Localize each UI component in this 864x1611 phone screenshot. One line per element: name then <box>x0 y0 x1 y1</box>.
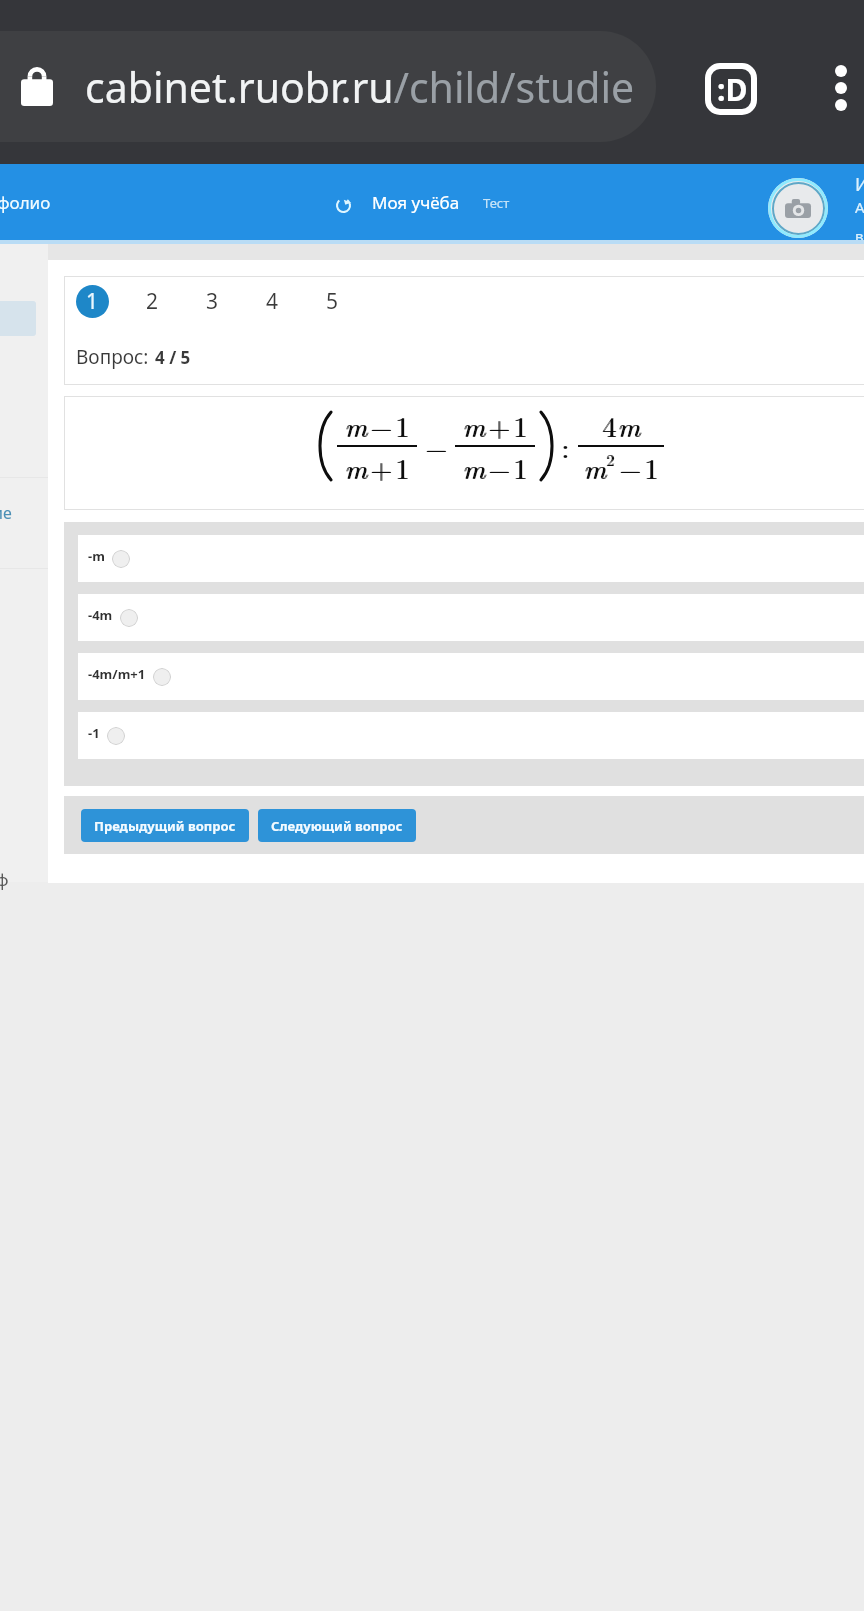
button[interactable]: Тест <box>483 194 510 212</box>
staticText: 2 <box>146 287 159 316</box>
staticText: 4 <box>602 405 617 445</box>
staticText: − <box>489 447 511 487</box>
button[interactable]: 2 <box>136 285 169 318</box>
button[interactable]: Profile photo <box>768 178 828 238</box>
staticText: − <box>370 405 392 445</box>
button[interactable]: 4 <box>256 285 289 318</box>
button[interactable]: Select -4m <box>120 609 138 627</box>
button[interactable]: Моя учёба <box>372 191 460 214</box>
staticText: -4m/m+1 <box>88 665 146 683</box>
staticText: m <box>345 447 368 487</box>
staticText: 4 / 5 <box>155 346 191 369</box>
staticText: -1 <box>88 724 100 742</box>
staticText: − <box>619 447 641 487</box>
staticText: m <box>584 447 607 487</box>
button[interactable]: -m <box>78 535 864 582</box>
staticText: 1 <box>514 405 529 445</box>
staticText: cabinet.ruobr.ru/child/studie <box>85 59 635 115</box>
button[interactable]: 3 <box>196 285 229 318</box>
button[interactable]: Предыдущий вопрос <box>81 809 249 842</box>
staticText: 4 <box>603 405 618 445</box>
staticText: : <box>562 426 570 466</box>
staticText: m <box>618 405 641 445</box>
button[interactable]: Refresh <box>336 198 351 213</box>
staticText: И <box>855 172 864 197</box>
button[interactable]: ие <box>0 502 12 524</box>
staticText: m <box>583 447 606 487</box>
staticText: m <box>462 405 485 445</box>
staticText: m <box>344 447 367 487</box>
staticText: 1 <box>395 405 410 445</box>
staticText: ф <box>0 868 9 891</box>
staticText: − <box>426 426 448 466</box>
staticText: -4m <box>88 606 113 624</box>
button[interactable]: Следующий вопрос <box>258 809 416 842</box>
staticText: 1 <box>513 447 528 487</box>
button[interactable]: More options <box>806 53 864 123</box>
staticText: − <box>488 447 510 487</box>
staticText: 1 <box>514 447 529 487</box>
staticText: 1 <box>395 447 410 487</box>
staticText: − <box>371 405 393 445</box>
staticText: 1 <box>513 405 528 445</box>
staticText: 1 <box>396 405 411 445</box>
staticText: m <box>617 405 640 445</box>
staticText: Следующий вопрос <box>271 817 403 835</box>
button[interactable]: -4m <box>78 594 864 641</box>
staticText: А <box>855 197 864 217</box>
button[interactable]: Select -1 <box>107 727 125 745</box>
staticText: в <box>855 226 864 246</box>
button[interactable]: Select -m <box>112 550 130 568</box>
staticText: 5 <box>326 287 339 316</box>
staticText: + <box>488 405 510 445</box>
button[interactable]: cabinet.ruobr.ru/child/studie <box>0 31 656 142</box>
staticText: + <box>489 405 511 445</box>
button[interactable]: -4m/m+1 <box>78 653 864 700</box>
staticText: -m <box>88 547 105 565</box>
button[interactable]: Tabs <box>684 40 780 136</box>
button[interactable]: фолио <box>0 191 51 214</box>
staticText: − <box>425 426 447 466</box>
staticText: 4 <box>266 287 279 316</box>
staticText: − <box>620 447 642 487</box>
staticText: :D <box>717 69 748 110</box>
staticText: 1 <box>644 447 659 487</box>
staticText: 2 <box>607 448 616 471</box>
staticText: m <box>344 405 367 445</box>
staticText: m <box>345 405 368 445</box>
staticText: + <box>371 447 393 487</box>
staticText: Предыдущий вопрос <box>94 817 236 835</box>
staticText: 1 <box>86 287 99 316</box>
staticText: 3 <box>206 287 219 316</box>
button[interactable]: 1 <box>76 285 109 318</box>
staticText: m <box>462 447 485 487</box>
button[interactable]: 5 <box>316 285 349 318</box>
staticText: + <box>370 447 392 487</box>
staticText: m <box>463 447 486 487</box>
staticText: 1 <box>645 447 660 487</box>
staticText: Вопрос: <box>76 344 154 370</box>
staticText: m <box>463 405 486 445</box>
staticText: 1 <box>396 447 411 487</box>
button[interactable]: -1 <box>78 712 864 759</box>
staticText: 2 <box>606 448 615 471</box>
button[interactable]: Select -4m/m+1 <box>153 668 171 686</box>
staticText: : <box>561 426 569 466</box>
